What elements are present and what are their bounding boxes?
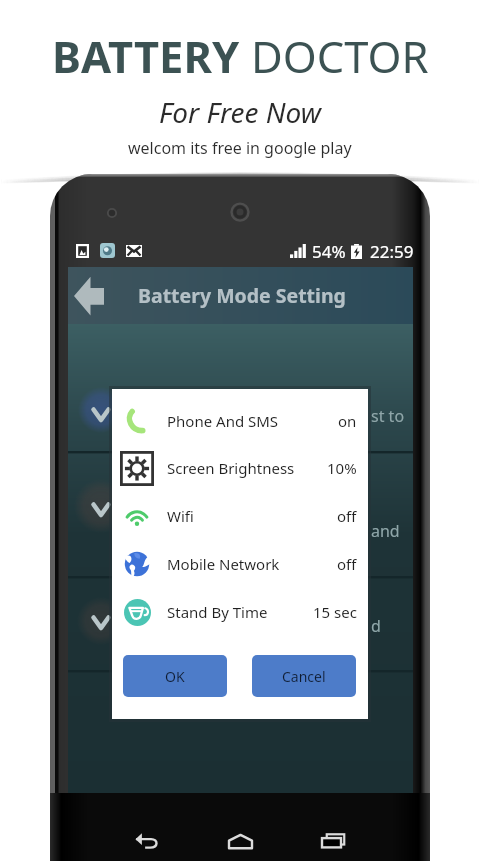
staticText: Stand By Time [167, 602, 268, 622]
button[interactable]: Screen Brightness [112, 444, 368, 491]
staticText: Screen Brightness [167, 458, 295, 478]
button[interactable]: Stand By Time [112, 588, 368, 635]
staticText: DOCTOR [251, 26, 429, 85]
button[interactable]: Back [68, 267, 413, 324]
staticText: Battery Mode Setting [138, 282, 346, 309]
staticText: For Free Now [159, 93, 321, 131]
button[interactable]: Phone And SMS [112, 397, 368, 444]
staticText: welcom its free in google play [128, 137, 352, 159]
staticText: BATTERY [52, 26, 251, 85]
staticText: 15 sec [313, 602, 357, 622]
button[interactable]: Wifi [112, 492, 368, 539]
staticText: st to [371, 405, 405, 427]
button[interactable]: OK [123, 655, 227, 697]
staticText: Mobile Network [167, 554, 280, 574]
staticText: and [371, 520, 400, 542]
other: Back [135, 832, 158, 849]
staticText: OK [165, 667, 185, 686]
staticText: Phone And SMS [167, 411, 279, 431]
button[interactable]: Mobile Network [112, 540, 368, 587]
staticText: d [371, 615, 381, 637]
staticText: Wifi [167, 506, 194, 526]
staticText: Cancel [282, 667, 326, 686]
staticText: 54% [312, 240, 346, 262]
button[interactable]: Cancel [252, 655, 356, 697]
staticText: off [337, 554, 357, 574]
staticText: on [338, 411, 357, 431]
staticText: 22:59 [370, 240, 414, 262]
other: Recent apps [321, 833, 346, 849]
other: Home [228, 834, 253, 849]
other: Back [74, 276, 104, 316]
staticText: 10% [327, 458, 357, 478]
staticText: off [337, 506, 357, 526]
